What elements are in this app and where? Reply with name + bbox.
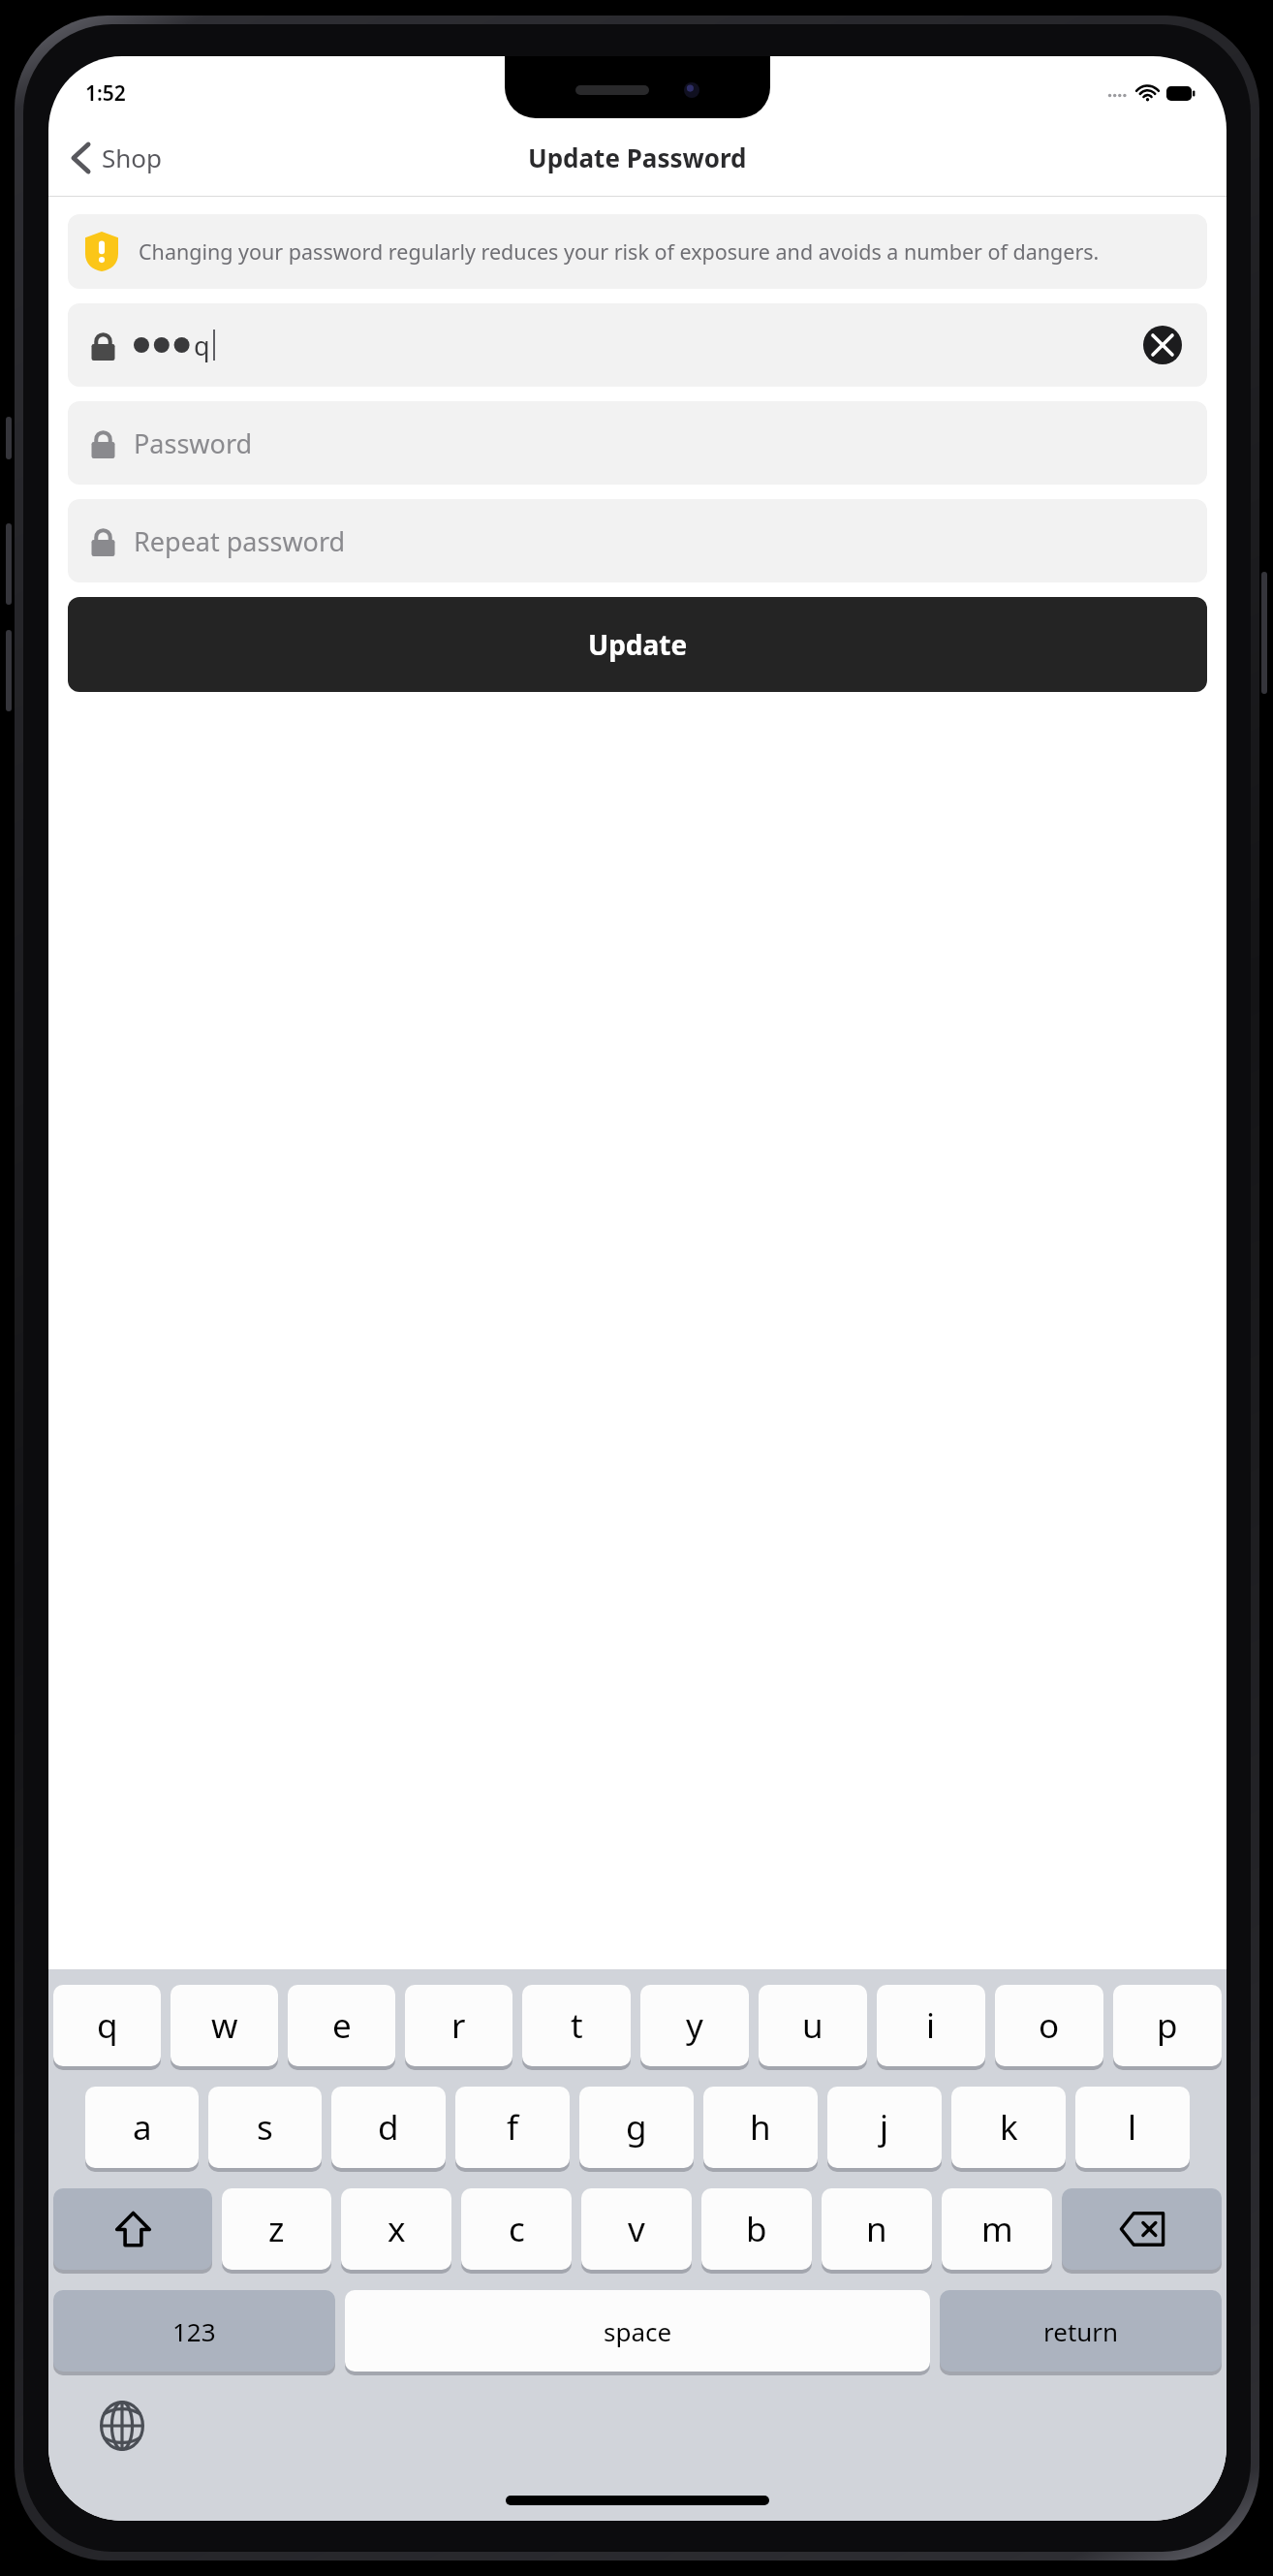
staticText: f (507, 2104, 519, 2151)
button[interactable]: q (53, 1985, 161, 2066)
staticText: b (746, 2206, 767, 2252)
button[interactable]: v (581, 2188, 692, 2270)
staticText: d (378, 2104, 399, 2151)
staticText: space (604, 2314, 672, 2348)
staticText: w (211, 2002, 238, 2049)
staticText: Update (588, 626, 688, 663)
staticText: v (628, 2206, 645, 2252)
button[interactable]: y (640, 1985, 749, 2066)
button[interactable]: Update (68, 597, 1207, 692)
staticText: o (1039, 2002, 1060, 2049)
staticText: s (257, 2104, 273, 2151)
button[interactable]: c (461, 2188, 572, 2270)
button[interactable]: w (171, 1985, 278, 2066)
staticText: a (133, 2104, 152, 2151)
staticText: g (626, 2104, 647, 2151)
staticText: m (981, 2206, 1013, 2252)
staticText: e (332, 2002, 352, 2049)
button[interactable]: m (942, 2188, 1052, 2270)
other: Shift (53, 2188, 212, 2274)
staticText: return (1043, 2314, 1119, 2348)
button[interactable]: g (579, 2087, 694, 2168)
staticText: 1:52 (85, 79, 126, 108)
staticText: l (1128, 2104, 1137, 2151)
staticText: c (509, 2206, 525, 2252)
button[interactable]: space (345, 2290, 930, 2372)
button[interactable]: b (701, 2188, 812, 2270)
staticText: t (571, 2002, 583, 2049)
button[interactable]: Shop (48, 131, 176, 184)
staticText: 123 (172, 2314, 216, 2348)
button[interactable]: z (222, 2188, 331, 2270)
button[interactable]: Change keyboard language (93, 2397, 151, 2455)
staticText: u (802, 2002, 823, 2049)
staticText: Changing your password regularly reduces… (139, 237, 1100, 266)
button[interactable] (1062, 2188, 1222, 2270)
button[interactable]: Repeat password (68, 499, 1207, 582)
button[interactable]: Password (68, 401, 1207, 485)
button[interactable]: Clear text (1141, 324, 1184, 366)
staticText: i (926, 2002, 936, 2049)
staticText: z (268, 2206, 285, 2252)
staticText: q (97, 2002, 118, 2049)
button[interactable]: r (405, 1985, 512, 2066)
button[interactable]: h (703, 2087, 818, 2168)
staticText: p (1157, 2002, 1178, 2049)
other: Backspace (1062, 2188, 1222, 2274)
staticText: h (750, 2104, 771, 2151)
staticText: k (1000, 2104, 1018, 2151)
staticText: Update Password (528, 141, 747, 174)
staticText: r (451, 2002, 466, 2049)
button[interactable]: s (208, 2087, 322, 2168)
button[interactable]: 123 (53, 2290, 335, 2372)
staticText: x (388, 2206, 406, 2252)
button[interactable]: x (341, 2188, 451, 2270)
staticText: Password (134, 425, 253, 461)
button[interactable]: a (85, 2087, 199, 2168)
button[interactable]: return (940, 2290, 1222, 2372)
button[interactable]: j (827, 2087, 942, 2168)
button[interactable]: l (1075, 2087, 1190, 2168)
staticText: j (880, 2104, 889, 2151)
button[interactable]: u (759, 1985, 867, 2066)
button[interactable]: p (1113, 1985, 1222, 2066)
staticText: Repeat password (134, 523, 346, 559)
button[interactable]: i (877, 1985, 985, 2066)
button[interactable]: t (522, 1985, 631, 2066)
button[interactable]: q (68, 303, 1207, 387)
button[interactable]: k (951, 2087, 1066, 2168)
button[interactable]: f (455, 2087, 570, 2168)
button[interactable]: o (995, 1985, 1103, 2066)
button[interactable]: d (331, 2087, 446, 2168)
button[interactable]: n (822, 2188, 932, 2270)
staticText: Shop (102, 141, 163, 174)
staticText: n (866, 2206, 887, 2252)
staticText: y (686, 2002, 703, 2049)
button[interactable]: e (288, 1985, 395, 2066)
staticText: q (194, 328, 210, 363)
button[interactable] (53, 2188, 212, 2270)
